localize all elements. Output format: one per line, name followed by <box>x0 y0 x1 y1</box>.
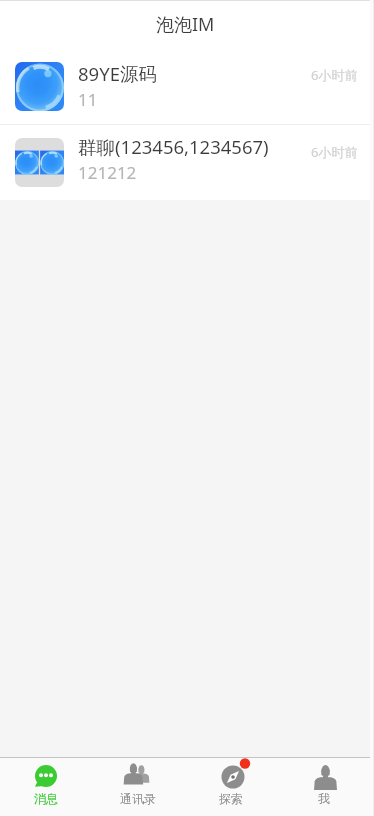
staticText: 消息 <box>34 791 58 806</box>
button[interactable]: 通讯录 <box>92 758 184 816</box>
staticText: 6小时前 <box>311 143 358 161</box>
button[interactable]: 群聊(123456,1234567) <box>0 125 370 200</box>
button[interactable]: 89YE源码 <box>0 48 370 124</box>
staticText: 群聊(123456,1234567) <box>78 134 269 159</box>
button[interactable]: 消息 <box>0 758 92 816</box>
staticText: 11 <box>78 88 98 111</box>
staticText: 探索 <box>219 791 243 806</box>
staticText: 通讯录 <box>120 791 156 806</box>
button[interactable]: 我 <box>277 758 370 816</box>
staticText: 89YE源码 <box>78 61 157 86</box>
button[interactable]: 探索 <box>184 758 277 816</box>
staticText: 121212 <box>78 161 137 184</box>
staticText: 我 <box>318 791 330 806</box>
staticText: 泡泡IM <box>156 12 215 37</box>
staticText: 6小时前 <box>311 66 358 84</box>
